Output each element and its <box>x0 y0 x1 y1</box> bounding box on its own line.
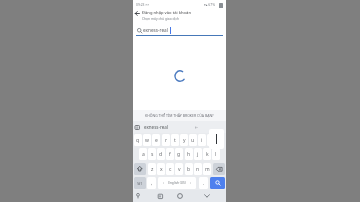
button[interactable]: ‹ English (US) › <box>158 177 196 189</box>
staticText: v <box>178 166 181 173</box>
button[interactable]: c <box>166 163 174 175</box>
staticText: !#1 <box>137 181 143 186</box>
staticText: b <box>187 166 191 173</box>
button[interactable]: s <box>148 148 156 160</box>
button[interactable]: x <box>157 163 165 175</box>
button[interactable] <box>204 194 210 198</box>
button[interactable]: q <box>134 134 142 146</box>
staticText: s <box>151 151 154 158</box>
button[interactable]: l <box>212 148 220 160</box>
staticText: ▾▴ 67% <box>204 2 215 7</box>
button[interactable] <box>210 177 225 189</box>
button[interactable]: v <box>175 163 183 175</box>
staticText: ‹ English (US) › <box>163 181 191 185</box>
staticText: f <box>169 151 171 158</box>
staticText: y <box>183 137 186 144</box>
staticText: c <box>169 166 172 173</box>
button[interactable]: t <box>171 134 179 146</box>
staticText: x <box>160 166 163 173</box>
staticText: Chọn máy chủ giao dịch <box>142 16 180 20</box>
button[interactable]: a <box>139 148 147 160</box>
staticText: z <box>151 166 154 173</box>
button[interactable]: p <box>216 134 224 146</box>
button[interactable]: exness-real <box>143 123 171 131</box>
staticText: h <box>187 151 191 158</box>
button[interactable] <box>134 163 146 175</box>
button[interactable] <box>133 9 142 18</box>
button[interactable]: , <box>147 177 156 189</box>
staticText: exness-real <box>144 124 168 130</box>
button[interactable] <box>135 125 140 130</box>
button[interactable]: e <box>152 134 160 146</box>
button[interactable]: y <box>180 134 188 146</box>
button[interactable]: f <box>166 148 174 160</box>
button[interactable]: j <box>194 148 202 160</box>
button[interactable] <box>158 194 163 199</box>
staticText: KHÔNG THỂ TÌM THẤY BROKER CỦA BẠN? <box>145 113 214 118</box>
staticText: e <box>155 137 158 144</box>
staticText: n <box>196 166 200 173</box>
staticText: u <box>191 137 195 144</box>
button[interactable]: m <box>203 163 211 175</box>
staticText: , <box>151 180 153 187</box>
button[interactable]: g <box>175 148 183 160</box>
button[interactable]: !#1 <box>134 177 146 189</box>
staticText: j <box>197 151 199 158</box>
staticText: i <box>201 137 203 144</box>
staticText: ‹- <box>195 124 198 130</box>
button[interactable]: k <box>203 148 211 160</box>
staticText: k <box>206 151 209 158</box>
button[interactable]: . <box>199 177 208 189</box>
button[interactable]: u <box>189 134 197 146</box>
button[interactable]: r <box>162 134 170 146</box>
button[interactable] <box>177 193 183 199</box>
staticText: m <box>205 166 210 173</box>
button[interactable]: d <box>157 148 165 160</box>
button[interactable]: w <box>143 134 151 146</box>
button[interactable]: b <box>185 163 193 175</box>
button[interactable]: z <box>148 163 156 175</box>
button[interactable] <box>136 193 140 199</box>
button[interactable] <box>213 163 225 175</box>
button[interactable]: KHÔNG THỂ TÌM THẤY BROKER CỦA BẠN? <box>133 110 226 121</box>
button[interactable]: h <box>185 148 193 160</box>
staticText: Đăng nhập vào tài khoản <box>142 10 191 16</box>
button[interactable]: n <box>194 163 202 175</box>
staticText: g <box>177 151 181 158</box>
staticText: d <box>159 151 163 158</box>
staticText: . <box>203 180 205 187</box>
staticText: l <box>215 151 217 158</box>
staticText: t <box>174 137 176 144</box>
staticText: a <box>142 151 145 158</box>
button[interactable]: i <box>198 134 206 146</box>
staticText: w <box>145 137 149 144</box>
staticText: exness-real <box>143 27 168 33</box>
button[interactable]: exness-real <box>133 25 226 36</box>
staticText: 09:23 ×× <box>136 2 150 6</box>
staticText: q <box>136 137 140 144</box>
staticText: r <box>165 137 168 144</box>
